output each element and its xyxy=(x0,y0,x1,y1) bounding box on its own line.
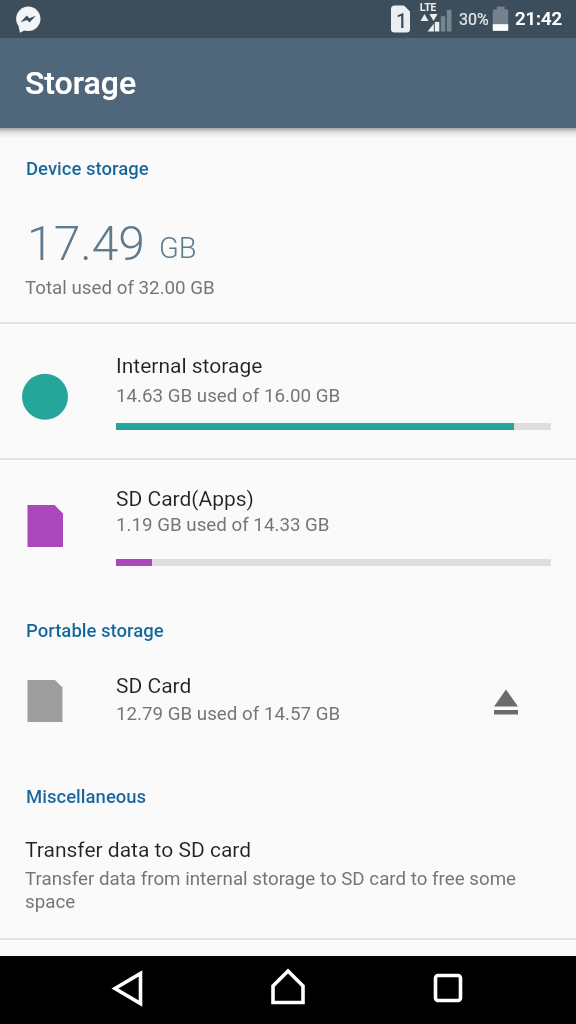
staticText: Portable storage xyxy=(26,620,164,642)
staticText: 12.79 GB used of 14.57 GB xyxy=(116,703,341,725)
staticText: SD Card xyxy=(116,674,192,699)
staticText: space xyxy=(25,891,76,913)
staticText: Total used of 32.00 GB xyxy=(25,277,215,299)
staticText: Device storage xyxy=(26,158,149,180)
staticText: LTE xyxy=(420,2,437,14)
staticText: Storage xyxy=(25,64,137,102)
staticText: GB xyxy=(159,231,197,265)
staticText: 1.19 GB used of 14.33 GB xyxy=(116,514,330,536)
staticText: 21:42 xyxy=(515,8,562,30)
staticText: 30% xyxy=(459,10,489,29)
button[interactable] xyxy=(416,956,480,1024)
staticText: Transfer data to SD card xyxy=(25,838,252,863)
staticText: 14.63 GB used of 16.00 GB xyxy=(116,385,341,407)
staticText: SD Card(Apps) xyxy=(116,487,254,512)
button[interactable]: SD Card(Apps) xyxy=(0,460,576,590)
button[interactable]: Transfer data to SD card xyxy=(0,826,576,926)
staticText: 17.49 xyxy=(27,215,145,271)
button[interactable] xyxy=(482,678,530,726)
staticText: Transfer data from internal storage to S… xyxy=(25,868,517,890)
staticText: 1 xyxy=(396,9,408,32)
staticText: Miscellaneous xyxy=(26,786,147,808)
button[interactable]: Internal storage xyxy=(0,324,576,458)
staticText: Internal storage xyxy=(116,354,263,379)
button[interactable] xyxy=(256,956,320,1024)
button[interactable] xyxy=(96,956,160,1024)
button[interactable]: SD Card xyxy=(0,652,576,764)
